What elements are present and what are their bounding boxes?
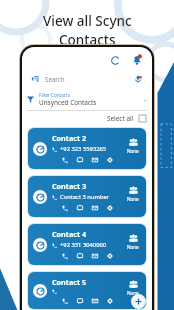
button[interactable]: Location: [106, 297, 114, 305]
button[interactable]: Select all: [28, 114, 146, 123]
button[interactable]: Message: [76, 156, 84, 164]
button[interactable]: Refresh: [108, 53, 122, 67]
staticText: None: [127, 290, 139, 296]
button[interactable]: Add contact: [131, 294, 146, 309]
staticText: None: [127, 244, 139, 250]
staticText: +92 323 5593265: [60, 145, 107, 153]
button[interactable]: Location: [106, 204, 114, 212]
button[interactable]: Email: [91, 204, 99, 212]
staticText: Select all: [107, 114, 134, 123]
button[interactable]: Contact 2: [28, 128, 146, 169]
button[interactable]: Group: [129, 234, 138, 243]
button[interactable]: Notifications: [129, 52, 144, 67]
button[interactable]: Group: [129, 138, 138, 147]
button[interactable]: Email: [91, 297, 99, 305]
staticText: Contact 5: [52, 277, 87, 287]
staticText: Contact 2: [52, 133, 87, 143]
staticText: Contact 4: [52, 229, 87, 239]
button[interactable]: Message: [76, 297, 84, 305]
staticText: Unsynced Contacts: [39, 98, 97, 107]
button[interactable]: Group: [129, 186, 138, 195]
staticText: Filter Contacts: [39, 92, 70, 98]
button[interactable]: Filter Contacts: [27, 92, 147, 107]
button[interactable]: Search: [27, 70, 147, 87]
staticText: Contact 3 number: [60, 193, 110, 201]
staticText: View all Scync: [43, 12, 132, 30]
button[interactable]: Contact 3: [28, 176, 146, 217]
button[interactable]: Contact 4: [28, 224, 146, 265]
staticText: Contacts: [59, 31, 116, 49]
button[interactable]: Contact 5: [28, 272, 146, 309]
staticText: +92 331 3040000: [60, 241, 107, 249]
staticText: Contact 3: [52, 181, 87, 191]
button[interactable]: Call: [61, 156, 69, 164]
staticText: None: [127, 196, 139, 202]
button[interactable]: Group: [129, 280, 138, 289]
button[interactable]: Email: [91, 252, 99, 260]
button[interactable]: Location: [106, 252, 114, 260]
button[interactable]: Call: [61, 297, 69, 305]
button[interactable]: Call: [61, 204, 69, 212]
staticText: Search: [45, 75, 65, 83]
button[interactable]: Message: [76, 204, 84, 212]
button[interactable]: Email: [91, 156, 99, 164]
button[interactable]: Call: [61, 252, 69, 260]
staticText: None: [127, 148, 139, 154]
staticText: -: [144, 95, 147, 104]
button[interactable]: Location: [106, 156, 114, 164]
button[interactable]: Message: [76, 252, 84, 260]
